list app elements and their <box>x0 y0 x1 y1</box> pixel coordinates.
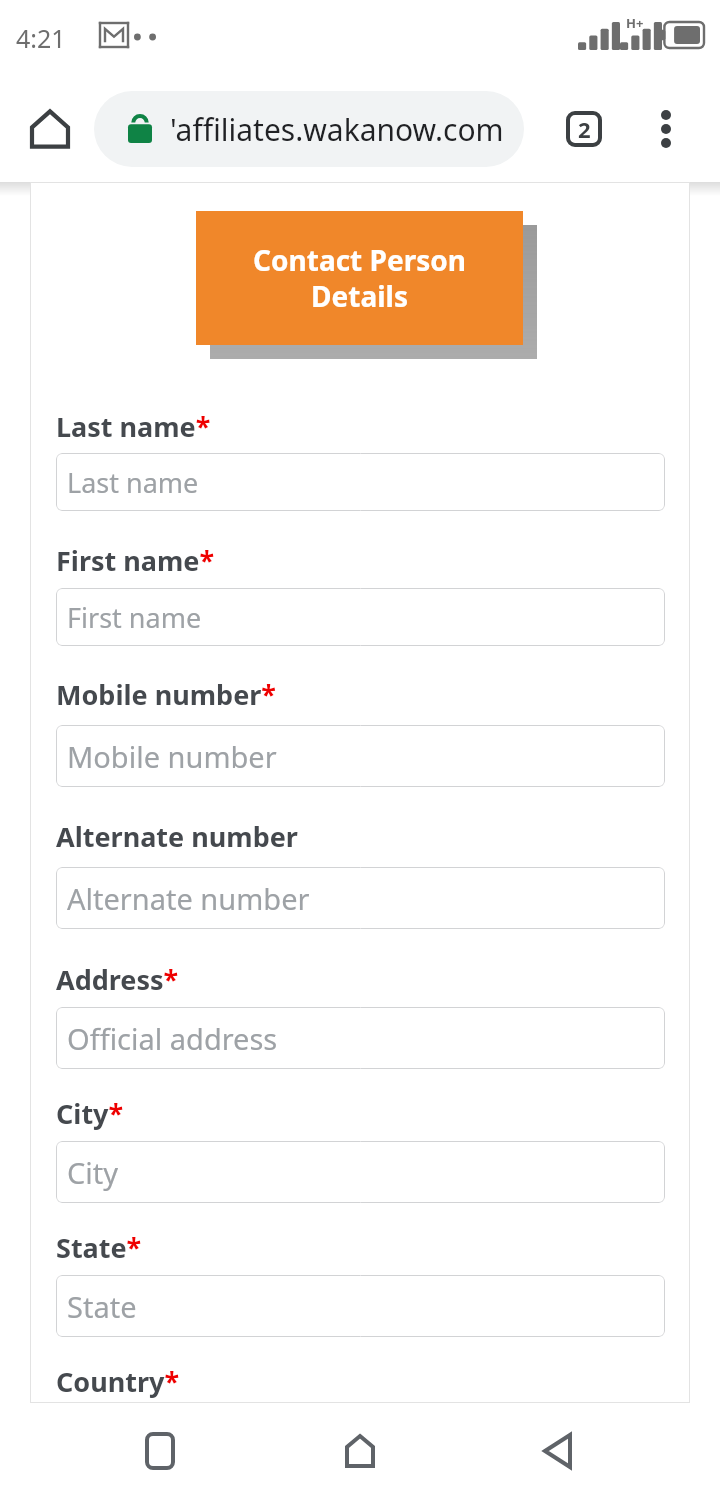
staticText: Mobile number* <box>56 676 276 713</box>
staticText: Country* <box>56 1363 180 1400</box>
button[interactable]: First name <box>56 588 665 646</box>
staticText: 'affiliates.wakanow.com <box>170 109 504 150</box>
staticText: Address* <box>56 961 179 998</box>
staticText: First name* <box>56 542 215 579</box>
button[interactable]: More options <box>630 93 702 165</box>
staticText: First name <box>67 599 202 636</box>
staticText: Last name <box>67 464 199 501</box>
staticText: State* <box>56 1229 142 1266</box>
staticText: State <box>67 1287 137 1326</box>
button[interactable]: City <box>56 1141 665 1203</box>
staticText: Alternate number <box>67 879 310 918</box>
button[interactable]: Contact Person Details <box>196 211 523 345</box>
staticText: Official address <box>67 1019 278 1058</box>
staticText: H+ <box>626 14 644 32</box>
button[interactable]: Home <box>324 1415 396 1487</box>
staticText: City* <box>56 1095 124 1132</box>
staticText: City <box>67 1153 119 1192</box>
staticText: Alternate number <box>56 818 298 855</box>
staticText: Contact Person Details <box>253 241 466 315</box>
staticText: Mobile number <box>67 737 277 776</box>
button[interactable]: Mobile number <box>56 725 665 787</box>
staticText: Last name* <box>56 408 211 445</box>
button[interactable]: Home <box>14 93 86 165</box>
button[interactable]: Alternate number <box>56 867 665 929</box>
staticText: 4:21 <box>16 21 66 55</box>
button[interactable]: Official address <box>56 1007 665 1069</box>
button[interactable]: 'affiliates.wakanow.com <box>94 91 524 167</box>
button[interactable]: Recent apps <box>124 1415 196 1487</box>
staticText: 2 <box>578 114 591 144</box>
button[interactable]: State <box>56 1275 665 1337</box>
button[interactable]: Back <box>522 1415 594 1487</box>
button[interactable]: Last name <box>56 453 665 511</box>
button[interactable]: Switch tabs, 2 open <box>548 93 620 165</box>
